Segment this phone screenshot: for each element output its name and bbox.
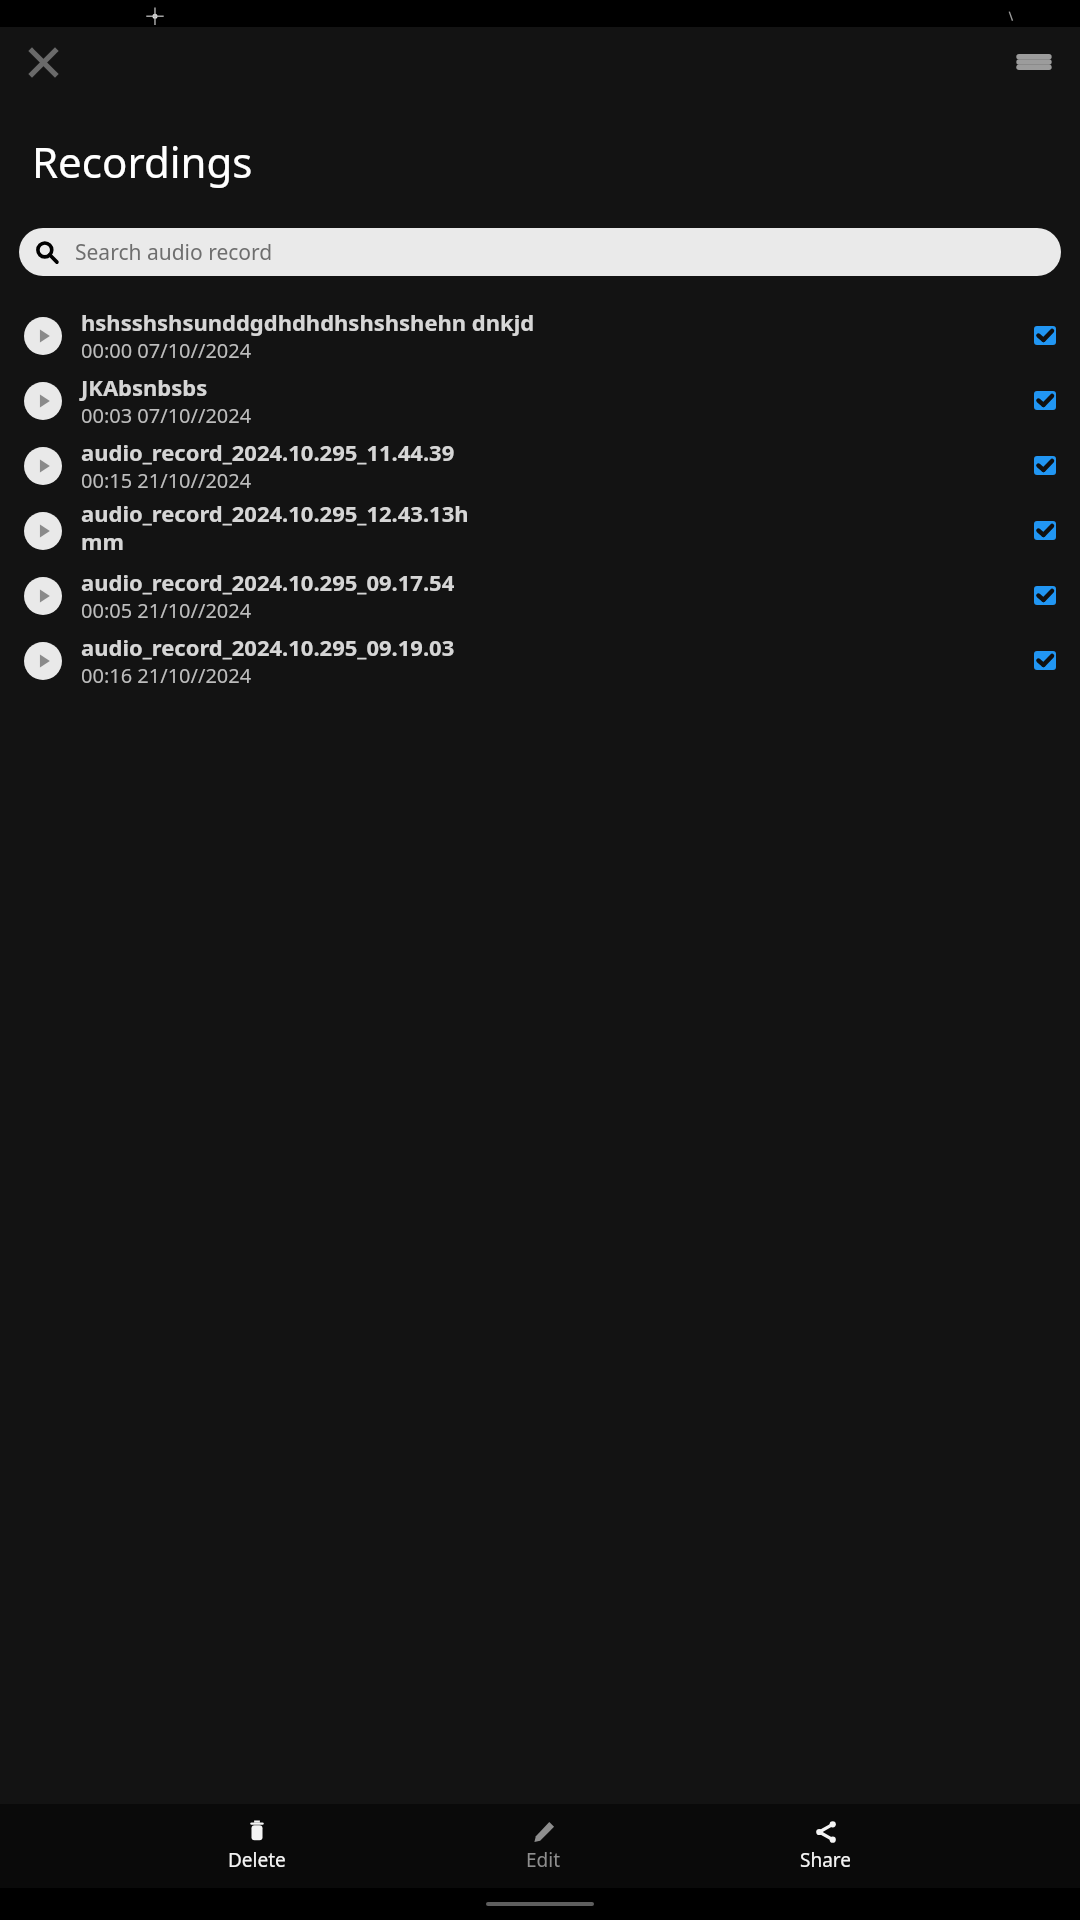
button[interactable]: Selected [1034, 586, 1056, 605]
button[interactable]: Play [0, 433, 1080, 498]
staticText: 00:05 21/10//2024 [81, 597, 252, 624]
button[interactable]: Edit [514, 1816, 573, 1877]
button[interactable]: Play [0, 628, 1080, 693]
staticText: Edit [526, 1847, 561, 1873]
staticText: Recordings [32, 133, 253, 190]
button[interactable]: Close [14, 33, 72, 91]
staticText: audio_record_2024.10.295_11.44.39 [81, 437, 455, 467]
button[interactable]: Play [24, 642, 62, 680]
button[interactable]: Play [0, 368, 1080, 433]
button[interactable]: Search audio record [19, 228, 1061, 276]
button[interactable]: Play [0, 303, 1080, 368]
button[interactable]: Play [24, 577, 62, 615]
staticText: audio_record_2024.10.295_09.19.03 [81, 632, 455, 662]
staticText: 00:16 21/10//2024 [81, 662, 252, 689]
staticText: hshsshshsunddgdhdhdhshshshehn dnkjd [81, 307, 535, 337]
button[interactable]: Delete [216, 1816, 298, 1877]
staticText: Share [800, 1847, 852, 1873]
staticText: audio_record_2024.10.295_09.17.54 [81, 567, 455, 597]
button[interactable]: Play [0, 498, 1080, 563]
button[interactable]: Menu [1004, 32, 1064, 92]
staticText: JKAbsnbsbs [81, 372, 208, 402]
button[interactable]: Play [24, 382, 62, 420]
button[interactable]: Play [24, 512, 62, 550]
button[interactable]: Selected [1034, 456, 1056, 475]
staticText: Search audio record [75, 238, 273, 267]
staticText: Delete [228, 1847, 286, 1873]
button[interactable]: Selected [1034, 326, 1056, 345]
staticText: 00:03 07/10//2024 [81, 402, 252, 429]
button[interactable]: Selected [1034, 521, 1056, 540]
staticText: 00:15 21/10//2024 [81, 467, 252, 494]
staticText: 00:00 07/10//2024 [81, 337, 252, 364]
button[interactable]: Play [24, 447, 62, 485]
button[interactable]: Selected [1034, 391, 1056, 410]
button[interactable]: Selected [1034, 651, 1056, 670]
button[interactable]: Play [24, 317, 62, 355]
staticText: audio_record_2024.10.295_12.43.13h mm [81, 498, 469, 556]
button[interactable]: Share [788, 1816, 864, 1877]
button[interactable]: Play [0, 563, 1080, 628]
